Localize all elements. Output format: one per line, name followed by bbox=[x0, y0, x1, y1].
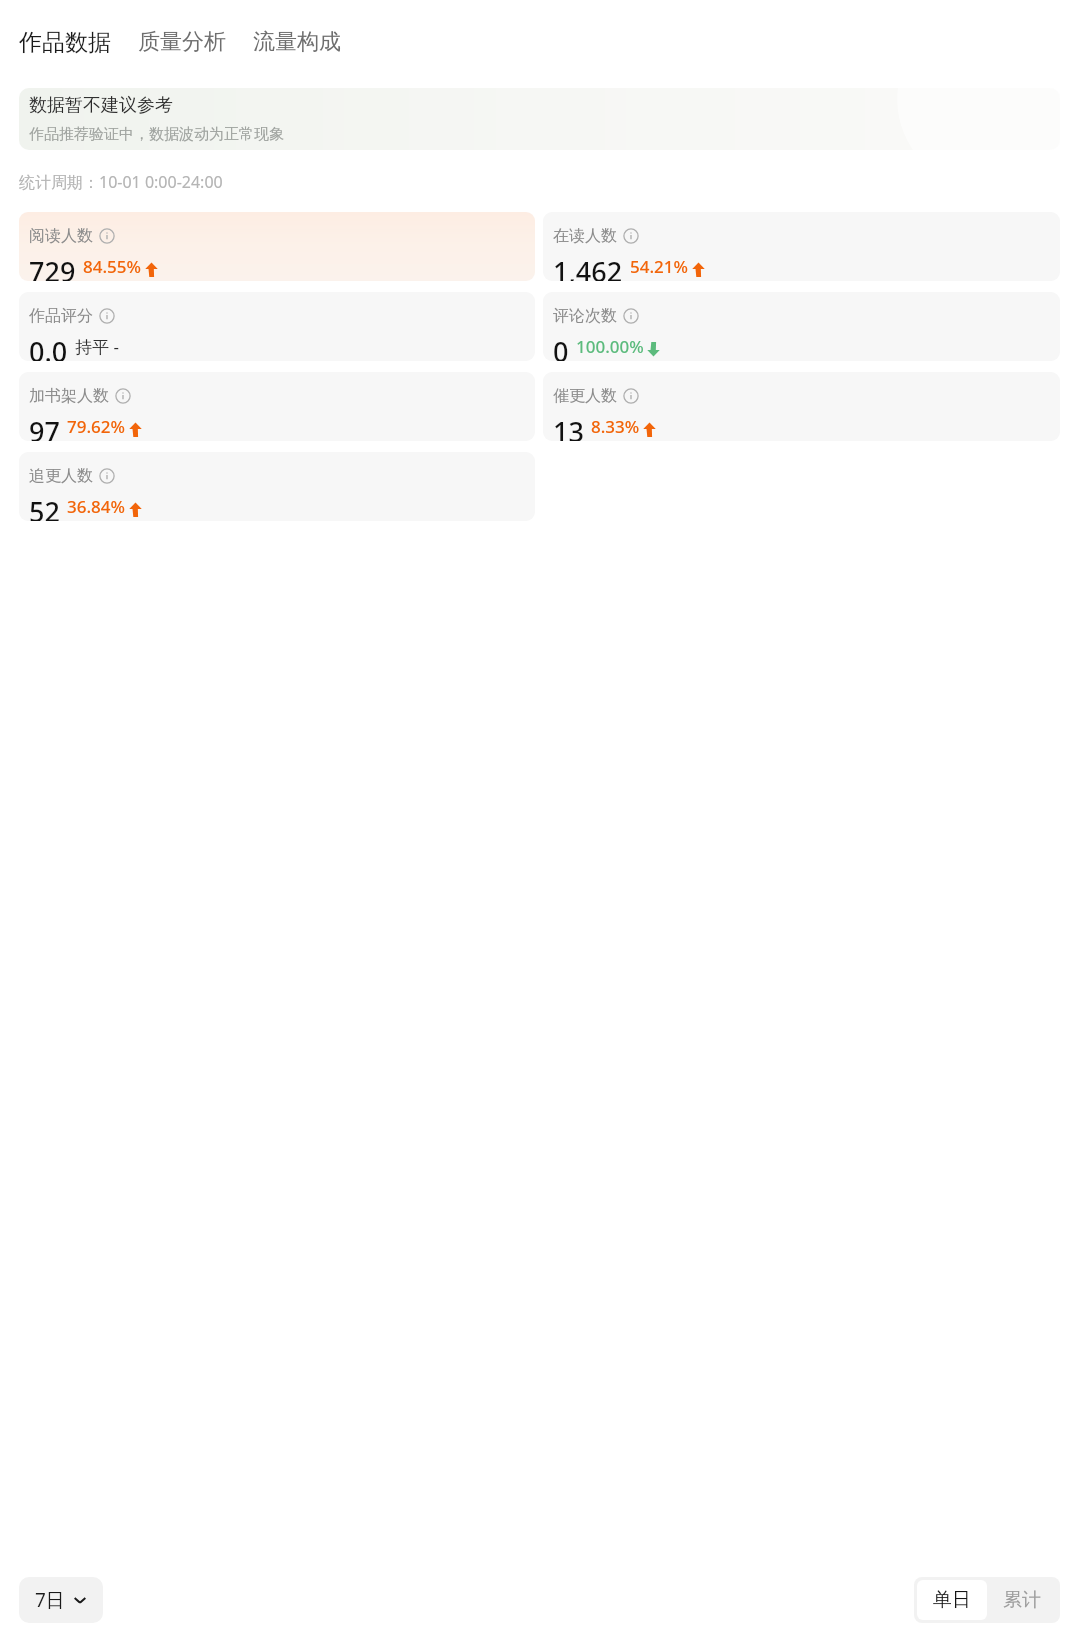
button[interactable]: 质量分析 bbox=[138, 24, 226, 60]
staticText: 52 bbox=[29, 493, 60, 521]
staticText: 729 bbox=[29, 253, 76, 281]
staticText: 持平 - bbox=[75, 335, 119, 358]
button[interactable]: 说明 bbox=[99, 228, 115, 244]
button[interactable]: 作品数据 bbox=[19, 24, 111, 61]
staticText: 13 bbox=[553, 413, 584, 441]
staticText: 作品数据 bbox=[19, 28, 111, 57]
button[interactable]: 说明 bbox=[99, 468, 115, 484]
staticText: 追更人数 bbox=[29, 466, 93, 486]
staticText: 阅读人数 bbox=[29, 226, 93, 246]
staticText: 质量分析 bbox=[138, 28, 226, 56]
staticText: 97 bbox=[29, 413, 60, 441]
button[interactable]: 单日 bbox=[917, 1580, 987, 1620]
staticText: 累计 bbox=[1003, 1588, 1041, 1612]
staticText: 催更人数 bbox=[553, 386, 617, 406]
staticText: 0 bbox=[553, 333, 569, 361]
staticText: 作品推荐验证中，数据波动为正常现象 bbox=[29, 125, 284, 144]
button[interactable]: 催更人数 bbox=[543, 372, 1060, 441]
button[interactable]: 阅读人数 bbox=[19, 212, 535, 281]
staticText: 54.21% bbox=[630, 255, 689, 278]
button[interactable]: 追更人数 bbox=[19, 452, 535, 521]
button[interactable]: 7日 bbox=[19, 1577, 103, 1623]
button[interactable]: 流量构成 bbox=[253, 24, 341, 60]
button[interactable]: 评论次数 bbox=[543, 292, 1060, 361]
staticText: 流量构成 bbox=[253, 28, 341, 56]
staticText: 36.84% bbox=[67, 495, 126, 518]
button[interactable]: 说明 bbox=[99, 308, 115, 324]
staticText: 数据暂不建议参考 bbox=[29, 94, 173, 117]
staticText: 7日 bbox=[35, 1587, 65, 1613]
staticText: 100.00% bbox=[576, 335, 644, 358]
staticText: 单日 bbox=[933, 1588, 971, 1612]
staticText: 84.55% bbox=[83, 255, 142, 278]
button[interactable]: 说明 bbox=[623, 308, 639, 324]
button[interactable]: 说明 bbox=[115, 388, 131, 404]
staticText: 1,462 bbox=[553, 253, 623, 281]
staticText: 79.62% bbox=[67, 415, 126, 438]
button[interactable]: 作品评分 bbox=[19, 292, 535, 361]
button[interactable]: 说明 bbox=[623, 228, 639, 244]
button[interactable]: 说明 bbox=[623, 388, 639, 404]
staticText: 作品评分 bbox=[29, 306, 93, 326]
staticText: 0.0 bbox=[29, 333, 68, 361]
staticText: 8.33% bbox=[591, 415, 640, 438]
staticText: 在读人数 bbox=[553, 226, 617, 246]
button[interactable]: 累计 bbox=[987, 1580, 1057, 1620]
staticText: 统计周期：10-01 0:00-24:00 bbox=[19, 171, 223, 193]
staticText: 评论次数 bbox=[553, 306, 617, 326]
button[interactable]: 在读人数 bbox=[543, 212, 1060, 281]
button[interactable]: 数据暂不建议参考 bbox=[19, 88, 1060, 150]
button[interactable]: 加书架人数 bbox=[19, 372, 535, 441]
staticText: 加书架人数 bbox=[29, 386, 109, 406]
